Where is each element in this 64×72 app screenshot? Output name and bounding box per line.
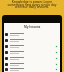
button[interactable] bbox=[4, 49, 60, 55]
button[interactable] bbox=[4, 37, 60, 43]
staticText: My lessons bbox=[24, 25, 41, 29]
button[interactable] bbox=[4, 31, 60, 37]
button[interactable] bbox=[4, 61, 60, 67]
button[interactable] bbox=[4, 67, 60, 72]
staticText: Knowledge is power. Learn something new … bbox=[4, 0, 60, 9]
button[interactable] bbox=[4, 43, 60, 49]
button[interactable] bbox=[4, 55, 60, 61]
